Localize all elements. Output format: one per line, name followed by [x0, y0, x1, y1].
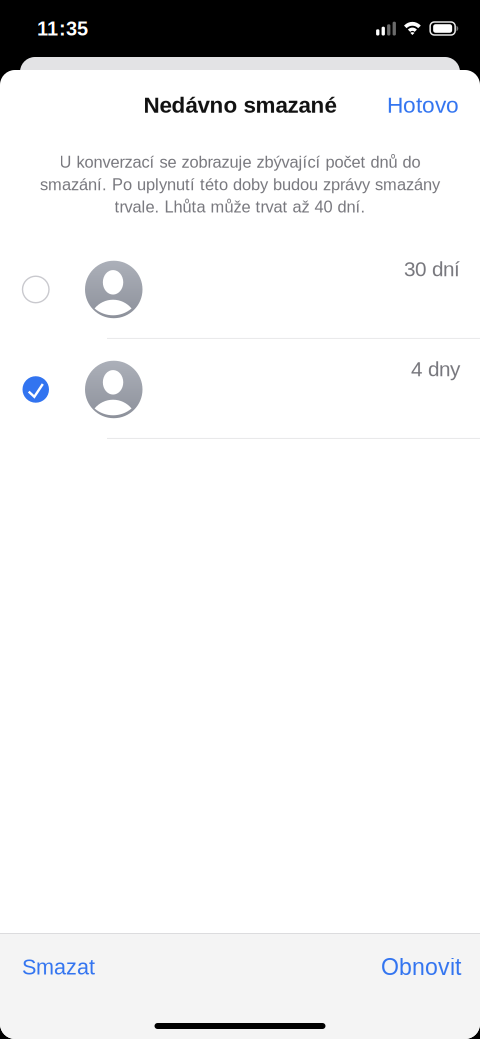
staticText: 11:35 — [37, 17, 88, 40]
staticText: smazání. Po uplynutí této doby budou zpr… — [40, 175, 440, 194]
staticText: trvale. Lhůta může trvat až 40 dní. — [114, 198, 365, 216]
button[interactable]: Obnovit — [381, 945, 480, 989]
button[interactable]: 30 dní — [0, 239, 480, 339]
staticText: 4 dny — [411, 357, 460, 381]
staticText: Hotovo — [387, 92, 459, 118]
staticText: Nedávno smazané — [143, 92, 336, 117]
staticText: 30 dní — [404, 257, 460, 281]
staticText: Smazat — [22, 955, 95, 979]
staticText: Obnovit — [381, 954, 461, 980]
button[interactable]: Hotovo — [387, 82, 480, 128]
button[interactable]: 4 dny — [0, 339, 480, 439]
staticText: U konverzací se zobrazuje zbývající poče… — [59, 153, 420, 171]
button[interactable]: Smazat — [0, 946, 95, 988]
